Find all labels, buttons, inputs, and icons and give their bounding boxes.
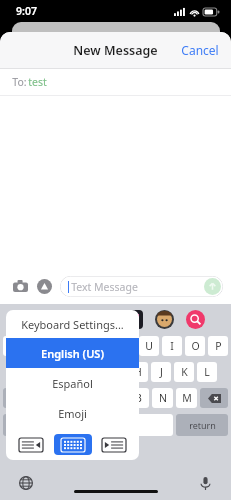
button[interactable]: English (US) [6, 338, 139, 368]
button[interactable]: Switch keyboard language [16, 473, 36, 493]
staticText: Emoji [58, 406, 87, 421]
button[interactable] [3, 414, 31, 436]
button[interactable]: B [128, 388, 149, 408]
button[interactable]: Photos app [124, 310, 143, 329]
button[interactable]: Space [34, 414, 173, 436]
button[interactable]: Text Message [60, 276, 223, 297]
staticText: P [215, 339, 222, 353]
staticText: G [111, 365, 119, 379]
staticText: Cancel [181, 42, 219, 58]
staticText: T [100, 339, 106, 353]
staticText: M [182, 391, 192, 405]
button[interactable]: Keyboard layout option [95, 434, 133, 455]
staticText: return [189, 419, 216, 431]
button[interactable]: Camera [8, 274, 32, 298]
button[interactable]: Send [204, 278, 221, 295]
button[interactable]: O [185, 336, 205, 356]
staticText: A [20, 365, 27, 379]
staticText: K [181, 365, 188, 379]
staticText: F [89, 365, 95, 379]
button[interactable]: Q [3, 336, 22, 356]
button[interactable]: I [162, 336, 182, 356]
button[interactable]: Memoji [155, 310, 174, 329]
button[interactable]: Emoji [6, 398, 139, 428]
button[interactable]: K [174, 362, 194, 382]
button[interactable]: Keyboard layout option [12, 434, 50, 455]
staticText: R [77, 339, 84, 353]
button[interactable]: E [47, 336, 67, 356]
staticText: Español [52, 376, 93, 391]
button[interactable]: L [197, 362, 217, 382]
button[interactable]: H [128, 362, 148, 382]
staticText: Keyboard Settings... [21, 317, 124, 332]
staticText: New Message [73, 42, 158, 59]
button[interactable]: Cancel [169, 34, 231, 66]
button[interactable]: W [25, 336, 44, 356]
button[interactable]: Shift [3, 388, 31, 408]
staticText: test [28, 75, 47, 89]
staticText: E [54, 339, 60, 353]
staticText: N [159, 391, 167, 405]
button[interactable]: return [176, 414, 228, 436]
staticText: S [43, 365, 49, 379]
staticText: O [191, 339, 200, 353]
button[interactable]: G [105, 362, 125, 382]
button[interactable]: Español [6, 368, 139, 398]
button[interactable]: T [93, 336, 113, 356]
button[interactable]: A [14, 362, 33, 382]
staticText: I [170, 339, 174, 353]
staticText: To: [11, 75, 28, 89]
button[interactable]: R [70, 336, 90, 356]
button[interactable]: X [57, 388, 77, 408]
button[interactable]: M [176, 388, 197, 408]
button[interactable]: Images search [186, 310, 205, 329]
staticText: J [160, 365, 163, 379]
button[interactable]: D [59, 362, 79, 382]
staticText: U [145, 339, 153, 353]
button[interactable]: N [152, 388, 173, 408]
button[interactable]: Keyboard Settings... [6, 310, 139, 338]
staticText: English (US) [41, 346, 104, 361]
button[interactable]: App Store [32, 274, 56, 298]
staticText: H [134, 365, 142, 379]
button[interactable]: Dictation [195, 473, 215, 493]
staticText: B [135, 391, 142, 405]
button[interactable]: Y [116, 336, 136, 356]
staticText: D [65, 365, 73, 379]
button[interactable]: Keyboard layout option [54, 434, 92, 455]
button[interactable]: P [208, 336, 228, 356]
button[interactable]: J [151, 362, 171, 382]
staticText: Text Message [71, 280, 138, 294]
button[interactable]: Backspace [200, 388, 228, 408]
button[interactable]: U [139, 336, 159, 356]
button[interactable]: F [82, 362, 102, 382]
button[interactable]: To: [0, 69, 231, 95]
staticText: L [204, 365, 210, 379]
button[interactable]: S [36, 362, 56, 382]
staticText: 9:07 [16, 4, 37, 18]
